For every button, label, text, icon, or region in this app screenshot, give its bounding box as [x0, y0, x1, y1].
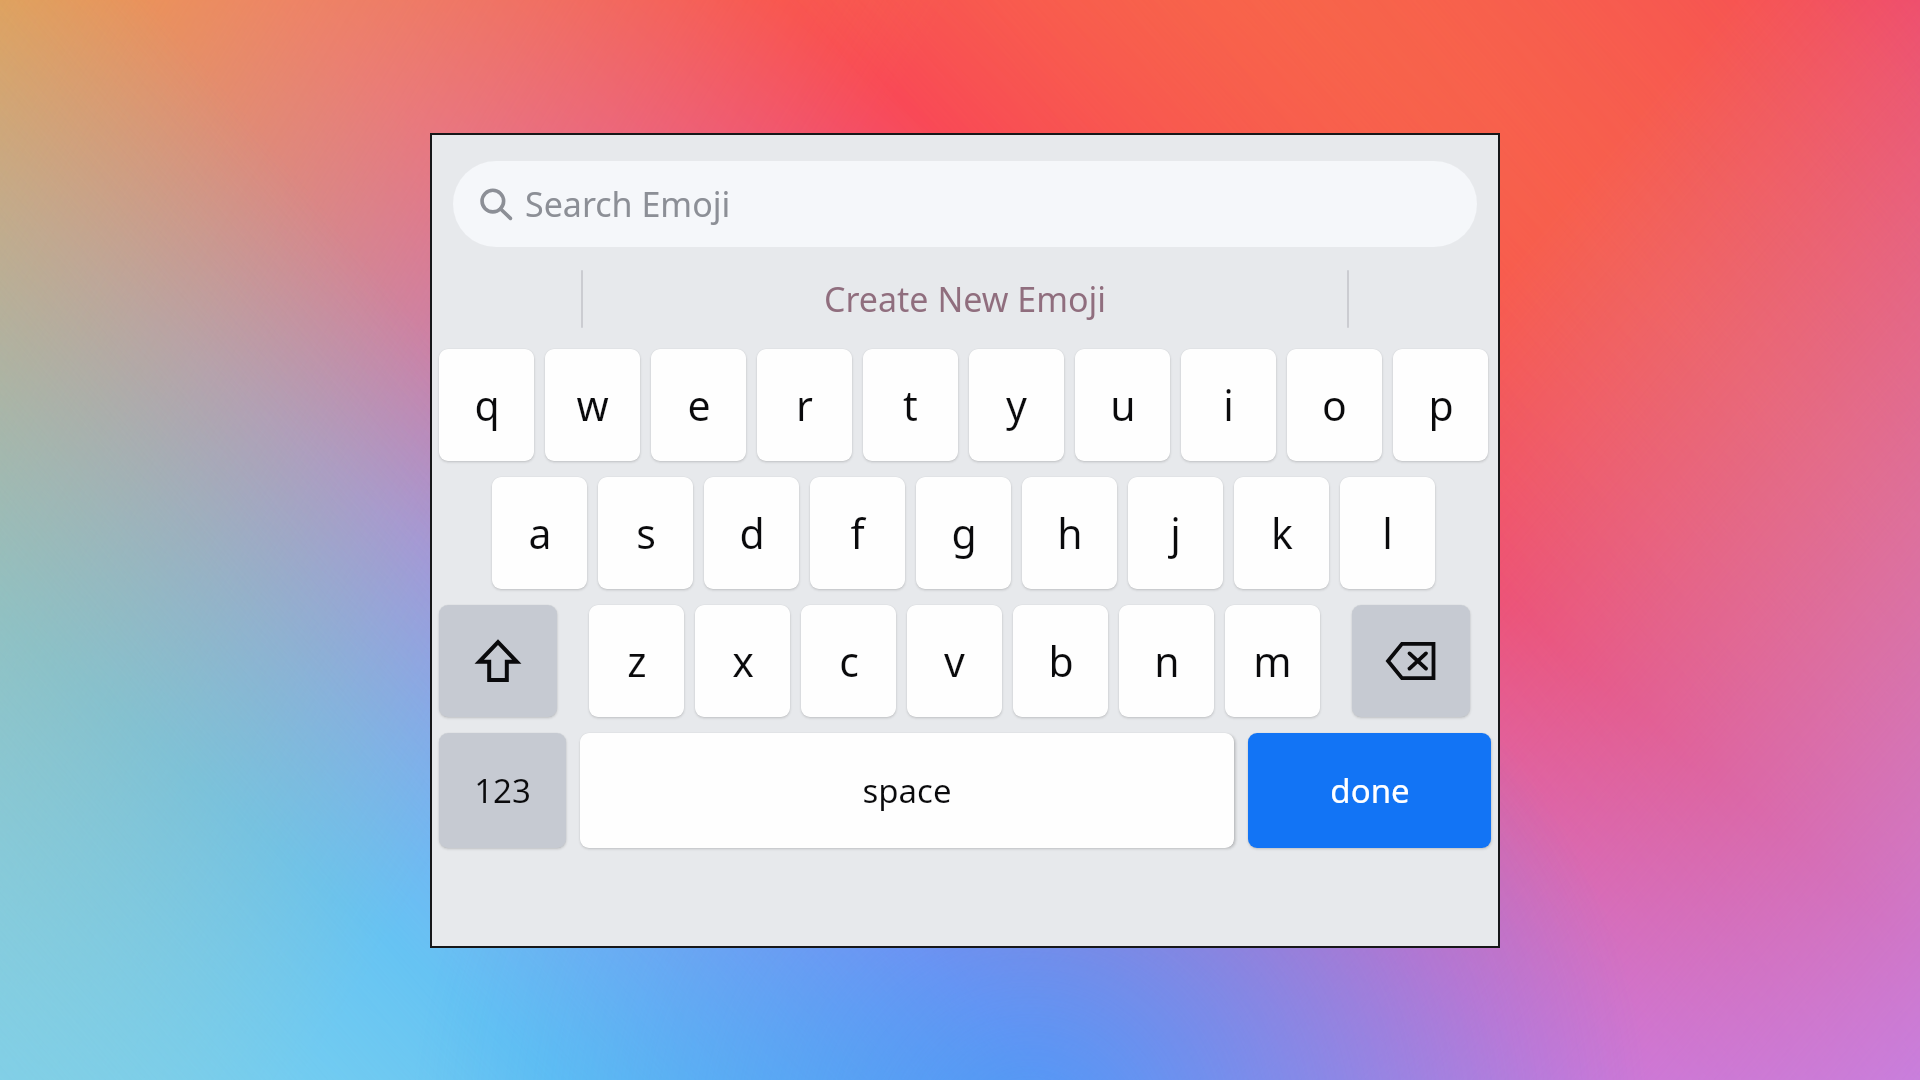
staticText: v [944, 633, 965, 689]
staticText: p [1428, 377, 1454, 433]
button[interactable]: j [1128, 477, 1223, 589]
staticText: x [732, 633, 754, 689]
staticText: done [1330, 768, 1410, 813]
staticText: a [528, 505, 552, 561]
staticText: l [1382, 505, 1393, 561]
staticText: e [687, 377, 711, 433]
button[interactable]: s [598, 477, 693, 589]
button[interactable]: y [969, 349, 1064, 461]
staticText: h [1057, 505, 1083, 561]
staticText: s [636, 505, 656, 561]
button[interactable]: t [863, 349, 958, 461]
button[interactable]: z [589, 605, 684, 717]
staticText: u [1110, 377, 1136, 433]
button[interactable]: d [704, 477, 799, 589]
button[interactable]: e [651, 349, 746, 461]
button[interactable]: a [492, 477, 587, 589]
staticText: n [1154, 633, 1180, 689]
staticText: c [839, 633, 859, 689]
staticText: k [1271, 505, 1293, 561]
staticText: y [1006, 377, 1027, 433]
staticText: b [1048, 633, 1074, 689]
button[interactable]: space [580, 733, 1234, 848]
staticText: o [1322, 377, 1347, 433]
button[interactable]: c [801, 605, 896, 717]
staticText: q [474, 377, 500, 433]
staticText: 123 [474, 768, 531, 813]
button[interactable]: k [1234, 477, 1329, 589]
button[interactable]: Search Emoji [453, 161, 1477, 247]
staticText: Search Emoji [525, 181, 731, 227]
staticText: w [576, 377, 609, 433]
staticText: space [862, 768, 952, 813]
staticText: j [1170, 505, 1181, 561]
staticText: z [627, 633, 647, 689]
button[interactable]: x [695, 605, 790, 717]
button[interactable]: q [439, 349, 534, 461]
button[interactable]: i [1181, 349, 1276, 461]
button[interactable]: o [1287, 349, 1382, 461]
button[interactable]: g [916, 477, 1011, 589]
button[interactable]: n [1119, 605, 1214, 717]
button[interactable]: l [1340, 477, 1435, 589]
button[interactable]: p [1393, 349, 1488, 461]
button[interactable]: Shift [439, 605, 557, 717]
button[interactable]: 123 [439, 733, 566, 848]
button[interactable]: h [1022, 477, 1117, 589]
staticText: d [739, 505, 765, 561]
staticText: i [1223, 377, 1234, 433]
staticText: t [903, 377, 918, 433]
button[interactable]: done [1248, 733, 1491, 848]
button[interactable]: w [545, 349, 640, 461]
button[interactable]: m [1225, 605, 1320, 717]
button[interactable]: Create New Emoji [432, 263, 1498, 335]
button[interactable]: v [907, 605, 1002, 717]
staticText: Create New Emoji [824, 276, 1107, 322]
button[interactable]: f [810, 477, 905, 589]
button[interactable]: u [1075, 349, 1170, 461]
staticText: m [1253, 633, 1292, 689]
button[interactable]: b [1013, 605, 1108, 717]
staticText: r [796, 377, 813, 433]
staticText: f [850, 505, 865, 561]
button[interactable]: Backspace [1352, 605, 1470, 717]
staticText: g [951, 505, 977, 561]
button[interactable]: r [757, 349, 852, 461]
